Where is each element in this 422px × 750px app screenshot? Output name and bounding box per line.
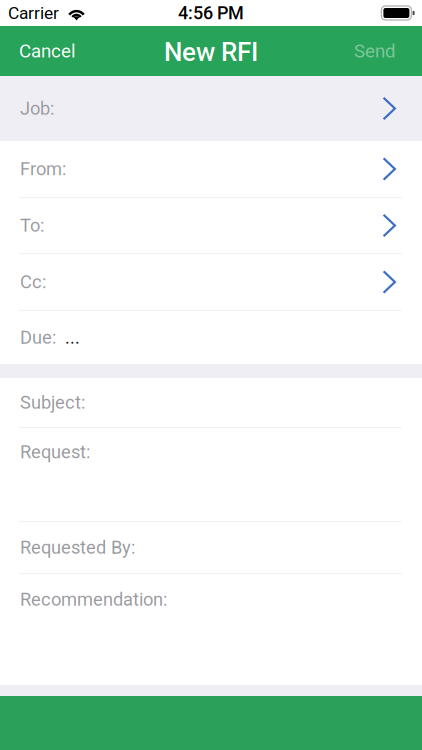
staticText: From: xyxy=(20,158,66,180)
button[interactable]: Recommendation: xyxy=(0,574,422,625)
staticText: New RFI xyxy=(164,37,258,67)
staticText: Job: xyxy=(20,98,54,119)
button[interactable]: Request: xyxy=(0,428,422,521)
staticText: Requested By: xyxy=(20,537,135,558)
button[interactable]: Subject: xyxy=(0,378,422,427)
staticText: To: xyxy=(20,215,44,236)
staticText: ... xyxy=(65,327,80,348)
staticText: Request: xyxy=(20,441,90,463)
staticText: Subject: xyxy=(20,392,85,413)
button[interactable]: Cc: xyxy=(0,254,422,310)
staticText: 4:56 PM xyxy=(178,2,244,24)
staticText: Carrier xyxy=(8,3,59,23)
staticText: Cc: xyxy=(20,271,46,293)
staticText: Cancel xyxy=(19,40,76,62)
button[interactable]: To: xyxy=(0,198,422,253)
button[interactable]: Requested By: xyxy=(0,522,422,573)
button[interactable]: Send xyxy=(340,26,422,76)
staticText: Recommendation: xyxy=(20,589,167,610)
button[interactable]: From: xyxy=(0,141,422,197)
button[interactable]: Job: xyxy=(0,76,422,141)
button[interactable]: Due: xyxy=(0,311,422,364)
staticText: Due: xyxy=(20,327,56,348)
button[interactable]: Cancel xyxy=(0,26,90,76)
staticText: Send xyxy=(354,40,396,62)
